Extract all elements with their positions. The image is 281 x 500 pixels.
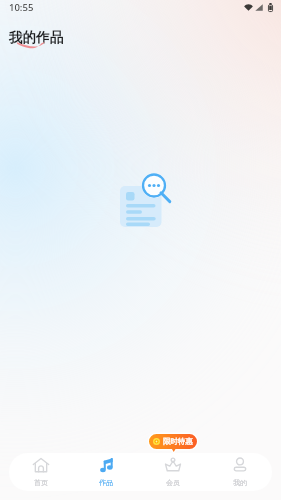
- staticText: 我的作品: [9, 29, 63, 46]
- staticText: 首页: [34, 478, 48, 487]
- staticText: 我的: [233, 478, 247, 487]
- button[interactable]: 首页: [17, 453, 65, 491]
- button[interactable]: 会员: [149, 453, 197, 491]
- button[interactable]: 作品: [82, 453, 130, 491]
- button[interactable]: 限时特惠: [149, 434, 197, 452]
- staticText: 会员: [166, 478, 180, 487]
- staticText: 作品: [99, 478, 113, 487]
- button[interactable]: 我的: [216, 453, 264, 491]
- staticText: 限时特惠: [163, 437, 193, 446]
- staticText: 10:55: [9, 1, 34, 14]
